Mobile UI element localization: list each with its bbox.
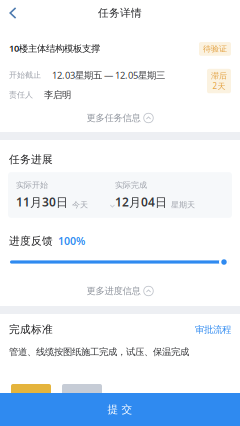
staticText: 2天	[212, 81, 225, 91]
staticText: 实际完成	[115, 180, 147, 190]
button[interactable]: 返回	[0, 0, 26, 26]
staticText: 任务详情	[98, 6, 142, 19]
staticText: 责任人	[9, 90, 33, 100]
staticText: 12月04日	[115, 194, 167, 210]
staticText: 100%	[58, 234, 85, 248]
staticText: 今天	[72, 200, 88, 210]
staticText: 更多进度信息	[86, 285, 140, 297]
staticText: 滞后	[211, 71, 227, 81]
staticText: 10楼主体结构模板支撑	[9, 42, 100, 54]
staticText: 开始截止	[9, 70, 41, 80]
button[interactable]: 更多进度信息	[0, 283, 240, 299]
staticText: 待验证	[203, 44, 227, 54]
button[interactable]: 更多任务信息	[0, 110, 240, 126]
staticText: 任务进展	[9, 153, 53, 166]
staticText: 12.03星期五 — 12.05星期三	[52, 69, 165, 81]
staticText: 更多任务信息	[86, 112, 140, 124]
staticText: 实际开始	[16, 180, 48, 190]
button[interactable]: 审批流程	[195, 324, 231, 335]
staticText: 审批流程	[195, 324, 231, 335]
staticText: 进度反馈	[9, 234, 53, 247]
staticText: 完成标准	[9, 323, 53, 336]
staticText: 提 交	[107, 403, 132, 416]
button[interactable]: 提 交	[0, 393, 240, 426]
staticText: 11月30日	[16, 194, 68, 210]
staticText: 管道、线缆按图纸施工完成，试压、保温完成	[9, 346, 189, 358]
staticText: 星期天	[171, 200, 195, 210]
staticText: 李启明	[44, 89, 71, 101]
